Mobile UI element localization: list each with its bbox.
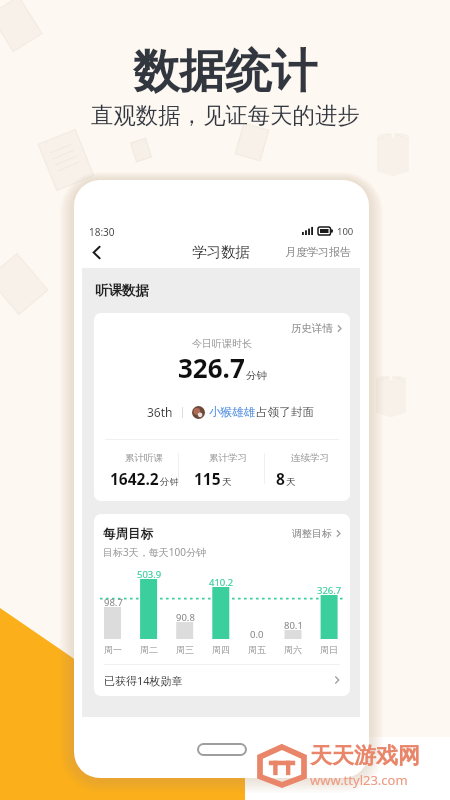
staticText: 分钟 <box>160 476 179 488</box>
staticText: 连续学习 <box>291 452 329 464</box>
staticText: 80.1 <box>284 619 303 632</box>
staticText: www.ttyl23.com <box>310 771 408 789</box>
staticText: 天 <box>286 476 296 488</box>
staticText: 503.9 <box>137 568 162 581</box>
staticText: 天 <box>222 476 232 488</box>
staticText: 36th <box>147 404 173 420</box>
button[interactable]: Back <box>85 243 107 261</box>
staticText: 100 <box>337 225 354 236</box>
staticText: 周二 <box>140 644 158 655</box>
staticText: 周三 <box>176 644 194 655</box>
staticText: 326.7 <box>317 584 342 597</box>
staticText: 目标3天，每天100分钟 <box>103 545 206 559</box>
staticText: 调整目标 <box>292 527 332 540</box>
staticText: 18:30 <box>89 225 115 236</box>
staticText: 天天游戏网 <box>310 742 420 770</box>
staticText: 周一 <box>104 644 122 655</box>
button[interactable]: 调整目标 <box>292 527 342 540</box>
staticText: 周六 <box>284 644 302 655</box>
staticText: 直观数据，见证每天的进步 <box>91 101 360 129</box>
staticText: 累计学习 <box>209 452 247 464</box>
staticText: 98.7 <box>104 596 123 609</box>
staticText: 分钟 <box>246 369 267 382</box>
button[interactable]: 历史详情 <box>291 322 343 335</box>
staticText: 月度学习报告 <box>285 245 351 259</box>
staticText: 数据统计 <box>133 43 317 101</box>
staticText: 累计听课 <box>125 452 163 464</box>
staticText: 占领了封面 <box>256 405 314 420</box>
staticText: 已获得14枚勋章 <box>104 673 183 688</box>
staticText: 326.7 <box>178 350 245 385</box>
button[interactable]: 月度学习报告 <box>285 245 351 259</box>
staticText: 学习数据 <box>192 243 250 261</box>
staticText: 90.8 <box>176 611 195 624</box>
staticText: 8 <box>276 468 285 489</box>
staticText: 周四 <box>212 644 230 655</box>
staticText: 小猴雄雄 <box>209 405 256 420</box>
button[interactable]: 已获得14枚勋章 <box>94 664 350 696</box>
staticText: 1642.2 <box>110 468 159 489</box>
staticText: 周五 <box>248 644 266 655</box>
staticText: 410.2 <box>209 576 234 589</box>
staticText: 历史详情 <box>291 322 333 335</box>
staticText: 115 <box>194 468 221 489</box>
staticText: 0.0 <box>250 628 264 641</box>
staticText: 周日 <box>320 644 338 655</box>
staticText: 今日听课时长 <box>192 337 252 350</box>
staticText: 听课数据 <box>95 282 149 299</box>
staticText: 每周目标 <box>103 526 153 542</box>
